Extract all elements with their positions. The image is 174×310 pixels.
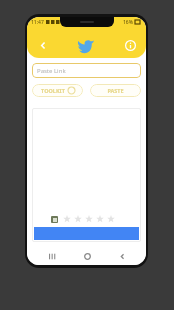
- button[interactable]: App icon: [51, 216, 58, 223]
- button[interactable]: Back: [33, 35, 53, 55]
- button[interactable]: Home: [76, 248, 98, 265]
- staticText: 11:47: [31, 19, 44, 26]
- button[interactable]: Info: [120, 35, 140, 55]
- staticText: PASTE: [107, 87, 124, 94]
- staticText: TOOLKIT: [41, 87, 65, 94]
- staticText: 16%: [123, 19, 133, 26]
- button[interactable]: Recents: [40, 248, 62, 265]
- button[interactable]: Paste Link: [32, 63, 141, 78]
- button[interactable]: Back: [111, 248, 133, 265]
- button[interactable]: TOOLKIT: [32, 84, 83, 97]
- button[interactable]: PASTE: [90, 84, 141, 97]
- staticText: Paste Link: [37, 67, 66, 75]
